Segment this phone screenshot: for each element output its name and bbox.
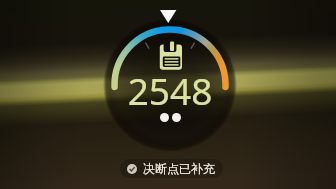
other: Completed bbox=[127, 164, 137, 174]
staticText: 决断点已补充 bbox=[143, 161, 215, 176]
button[interactable]: Completed bbox=[120, 159, 223, 178]
staticText: 2548 bbox=[105, 65, 235, 115]
